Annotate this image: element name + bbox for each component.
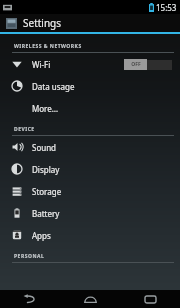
staticText: OFF	[131, 61, 141, 68]
button[interactable]: Storage	[0, 180, 180, 202]
staticText: DEVICE	[14, 126, 35, 133]
staticText: WIRELESS & NETWORKS	[14, 43, 82, 50]
staticText: Storage	[32, 186, 62, 197]
staticText: More…	[32, 103, 59, 114]
button[interactable]: Back	[0, 290, 60, 308]
staticText: 15:53	[156, 2, 177, 13]
button[interactable]: Wi-Fi toggle, off	[124, 59, 172, 70]
button[interactable]: Battery	[0, 202, 180, 224]
button[interactable]: Apps	[0, 224, 180, 246]
staticText: Settings	[23, 16, 62, 30]
button[interactable]: Wi-Fi	[0, 53, 180, 75]
staticText: PERSONAL	[14, 253, 45, 260]
button[interactable]: Home	[60, 290, 120, 308]
staticText: Wi-Fi	[32, 59, 51, 70]
button[interactable]: Data usage	[0, 75, 180, 97]
staticText: Battery	[32, 208, 60, 219]
button[interactable]: Display	[0, 158, 180, 180]
staticText: Apps	[32, 230, 51, 241]
button[interactable]: More…	[0, 97, 180, 119]
staticText: Data usage	[32, 81, 75, 92]
button[interactable]: Recent apps	[120, 290, 180, 308]
staticText: Sound	[32, 142, 57, 153]
staticText: Display	[32, 164, 60, 175]
button[interactable]: Sound	[0, 136, 180, 158]
